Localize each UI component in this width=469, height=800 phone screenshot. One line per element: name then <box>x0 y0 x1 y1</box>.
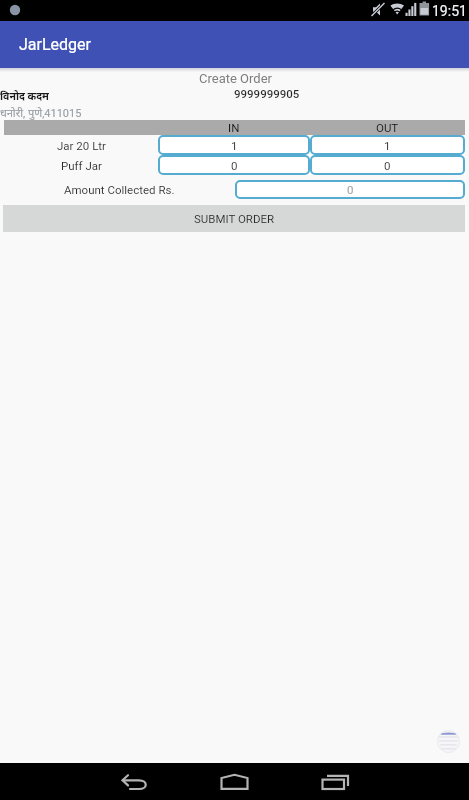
staticText: OUT <box>376 121 399 134</box>
staticText: 0 <box>347 183 354 196</box>
staticText: 0 <box>384 159 391 172</box>
staticText: SUBMIT ORDER <box>194 212 275 225</box>
button[interactable]: Jar 20 Ltr <box>4 135 158 155</box>
staticText: Jar 20 Ltr <box>57 139 106 152</box>
staticText: JarLedger <box>19 35 91 54</box>
button[interactable]: SUBMIT ORDER <box>3 205 465 232</box>
button[interactable]: Back <box>95 763 185 800</box>
staticText: 9999999905 <box>234 87 300 100</box>
staticText: 1 <box>384 139 391 152</box>
button[interactable]: Puff Jar <box>4 155 158 175</box>
staticText: 1 <box>231 139 238 152</box>
staticText: Puff Jar <box>61 159 102 172</box>
staticText: IN <box>228 121 240 134</box>
button[interactable]: Home <box>190 763 280 800</box>
staticText: Create Order <box>199 71 272 86</box>
button[interactable]: Amount Collected Rs. <box>4 180 235 199</box>
button[interactable]: 0 <box>310 155 465 175</box>
button[interactable]: JarLedger <box>0 21 469 68</box>
button[interactable]: 1 <box>310 135 465 155</box>
staticText: विनोद कदम <box>0 89 49 103</box>
staticText: धनोरी, पुणे,411015 <box>0 105 82 120</box>
button[interactable]: Recent apps <box>290 763 380 800</box>
button[interactable]: 0 <box>158 155 310 175</box>
staticText: 0 <box>231 159 238 172</box>
staticText: 19:51 <box>432 3 467 19</box>
staticText: Amount Collected Rs. <box>64 183 175 196</box>
button[interactable]: 0 <box>235 180 465 199</box>
button[interactable]: 1 <box>158 135 310 155</box>
